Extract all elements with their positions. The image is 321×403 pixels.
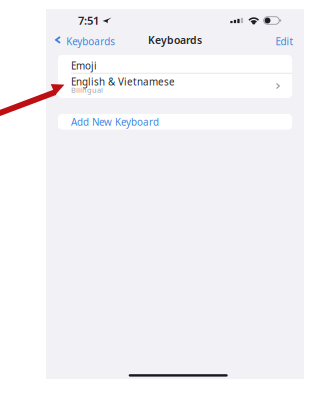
staticText: Bilingual xyxy=(71,85,103,95)
staticText: Edit xyxy=(275,35,293,48)
staticText: Emoji xyxy=(71,59,97,72)
button[interactable]: Keyboards xyxy=(46,32,121,50)
button[interactable]: Emoji xyxy=(58,55,292,73)
staticText: 7:51 xyxy=(78,13,99,28)
button[interactable]: English & Vietnamese xyxy=(58,74,292,98)
button[interactable]: Edit xyxy=(267,32,304,50)
staticText: Keyboards xyxy=(66,35,115,48)
button[interactable]: Add New Keyboard xyxy=(58,114,292,130)
staticText: Keyboards xyxy=(148,33,202,47)
staticText: English & Vietnamese xyxy=(71,75,175,88)
staticText: Add New Keyboard xyxy=(71,115,159,128)
